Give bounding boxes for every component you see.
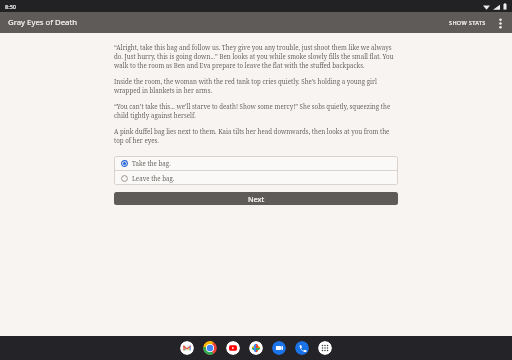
staticText: A pink duffel bag lies next to them. Kai… — [114, 127, 398, 145]
button[interactable]: Meet — [272, 341, 286, 355]
staticText: Inside the room, the woman with the red … — [114, 77, 398, 95]
staticText: “Alright, take this bag and follow us. T… — [114, 43, 398, 70]
staticText: Take the bag. — [132, 159, 171, 167]
staticText: Gray Eyes of Death — [8, 17, 78, 28]
staticText: Leave the bag. — [132, 174, 175, 182]
button[interactable]: YouTube — [226, 341, 240, 355]
button[interactable]: Phone — [295, 341, 309, 355]
button[interactable]: Photos — [249, 341, 263, 355]
staticText: 8:50 — [5, 3, 16, 10]
staticText: SHOW STATS — [449, 19, 486, 27]
staticText: Next — [248, 194, 265, 204]
button[interactable]: More options — [491, 14, 509, 32]
button[interactable]: SHOW STATS — [444, 15, 491, 31]
button[interactable]: Next — [114, 192, 398, 205]
button[interactable]: Gmail — [180, 341, 194, 355]
button[interactable]: Take the bag. — [114, 156, 398, 170]
button[interactable]: All apps — [318, 341, 332, 355]
button[interactable]: Leave the bag. — [114, 171, 398, 185]
button[interactable]: Chrome — [203, 341, 217, 355]
staticText: “You can’t take this... we’ll starve to … — [114, 102, 398, 120]
